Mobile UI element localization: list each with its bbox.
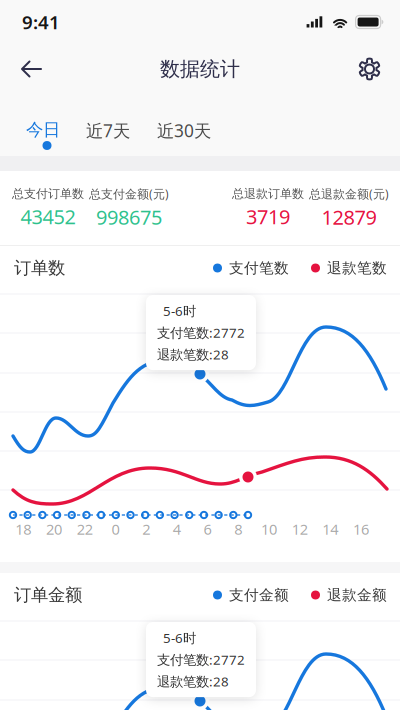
staticText: 订单数: [14, 257, 65, 279]
staticText: 2: [142, 519, 150, 539]
button[interactable]: 近7天: [86, 119, 130, 142]
staticText: 退款笔数:28: [157, 672, 229, 690]
staticText: 22: [77, 519, 93, 539]
staticText: 近30天: [157, 119, 211, 142]
staticText: 12879: [321, 204, 376, 230]
staticText: 18: [15, 519, 31, 539]
staticText: 总支付订单数: [12, 186, 84, 201]
staticText: 支付笔数:2772: [157, 324, 245, 341]
staticText: 总退款金额(元): [309, 186, 389, 202]
staticText: 9:41: [22, 10, 60, 34]
staticText: 5-6时: [157, 629, 196, 647]
staticText: 支付金额: [229, 586, 289, 604]
staticText: 3719: [246, 203, 290, 230]
staticText: 0: [111, 519, 119, 539]
button[interactable]: 返回: [0, 45, 57, 92]
staticText: 退款笔数:28: [157, 345, 229, 363]
staticText: 支付笔数: [229, 259, 289, 277]
staticText: 8: [234, 519, 242, 539]
button[interactable]: 今日: [25, 119, 61, 149]
button[interactable]: 设置: [344, 44, 400, 93]
staticText: 近7天: [86, 119, 130, 142]
staticText: 14: [322, 519, 338, 539]
staticText: 20: [46, 519, 62, 539]
staticText: 4: [173, 519, 181, 539]
staticText: 退款笔数: [327, 259, 387, 277]
staticText: 43452: [20, 203, 75, 230]
staticText: 5-6时: [157, 302, 196, 320]
button[interactable]: 近30天: [157, 119, 211, 142]
staticText: 12: [292, 519, 308, 539]
staticText: 16: [353, 519, 369, 539]
staticText: 订单金额: [14, 584, 82, 606]
staticText: 总支付金额(元): [89, 186, 169, 202]
staticText: 10: [261, 519, 277, 539]
staticText: 998675: [96, 204, 162, 230]
staticText: 总退款订单数: [232, 186, 304, 201]
staticText: 今日: [26, 119, 60, 140]
staticText: 退款金额: [327, 586, 387, 604]
staticText: 支付笔数:2772: [157, 651, 245, 668]
staticText: 6: [203, 519, 211, 539]
staticText: 数据统计: [160, 57, 240, 81]
